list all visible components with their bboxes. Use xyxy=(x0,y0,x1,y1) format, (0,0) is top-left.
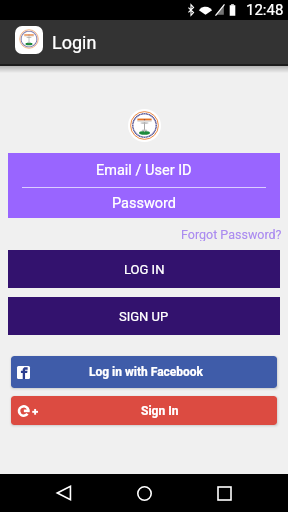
button[interactable]: Home xyxy=(124,474,164,512)
staticText: Sign In xyxy=(141,404,179,418)
staticText: Email / User ID xyxy=(96,162,192,179)
staticText: Password xyxy=(112,195,177,212)
button[interactable]: Recents xyxy=(204,474,244,512)
staticText: SIGN UP xyxy=(119,309,169,324)
staticText: Login xyxy=(52,32,97,53)
button[interactable]: Forgot Password? xyxy=(181,227,282,241)
staticText: Log in with Facebook xyxy=(89,365,203,379)
button[interactable]: Log in with Facebook xyxy=(11,356,277,388)
button[interactable]: Email / User ID xyxy=(8,153,280,187)
staticText: 12:48 xyxy=(246,1,284,19)
button[interactable]: App logo xyxy=(15,26,43,54)
button[interactable]: LOG IN xyxy=(8,250,280,288)
button[interactable]: Password xyxy=(8,188,280,218)
button[interactable]: Sign In xyxy=(11,396,277,425)
button[interactable]: SIGN UP xyxy=(8,297,280,335)
button[interactable]: Back xyxy=(44,474,84,512)
staticText: Forgot Password? xyxy=(181,227,282,241)
staticText: LOG IN xyxy=(124,262,165,277)
